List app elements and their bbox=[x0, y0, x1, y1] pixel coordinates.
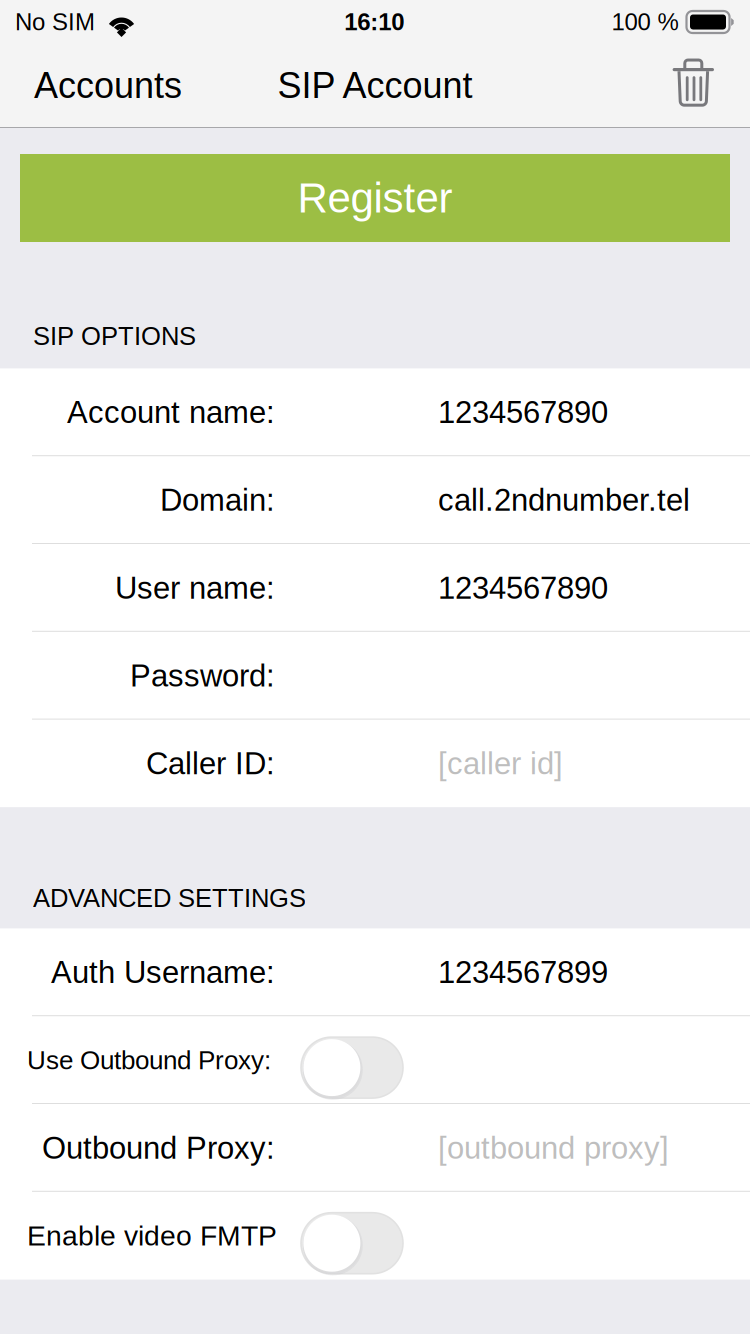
button[interactable]: Account name: bbox=[0, 368, 750, 456]
staticText: Auth Username: bbox=[51, 955, 275, 990]
staticText: [outbound proxy] bbox=[438, 1131, 669, 1165]
button[interactable]: Caller ID: bbox=[0, 720, 750, 807]
staticText: Caller ID: bbox=[146, 746, 275, 781]
staticText: SIP OPTIONS bbox=[33, 322, 196, 350]
staticText: Register bbox=[297, 174, 452, 221]
staticText: Account name: bbox=[67, 395, 275, 430]
button[interactable]: Accounts bbox=[0, 44, 216, 127]
button[interactable]: Outbound Proxy: bbox=[0, 1104, 750, 1192]
staticText: ADVANCED SETTINGS bbox=[33, 884, 306, 912]
staticText: Password: bbox=[130, 658, 275, 693]
staticText: Enable video FMTP bbox=[27, 1220, 277, 1251]
button[interactable]: User name: bbox=[0, 544, 750, 632]
staticText: 1234567899 bbox=[438, 955, 608, 990]
staticText: 1234567890 bbox=[438, 395, 608, 430]
staticText: SIP Account bbox=[277, 65, 472, 106]
staticText: 16:10 bbox=[344, 9, 404, 35]
staticText: call.2ndnumber.tel bbox=[438, 483, 690, 517]
staticText: Outbound Proxy: bbox=[42, 1131, 275, 1165]
staticText: [caller id] bbox=[438, 746, 563, 781]
button[interactable]: Delete account bbox=[645, 44, 750, 127]
button[interactable]: Enable video FMTP bbox=[301, 1198, 403, 1274]
button[interactable]: Use Outbound Proxy: bbox=[301, 1022, 403, 1098]
staticText: 1234567890 bbox=[438, 571, 608, 605]
button[interactable]: Password: bbox=[0, 632, 750, 720]
button[interactable]: Auth Username: bbox=[0, 928, 750, 1016]
staticText: No SIM bbox=[15, 9, 95, 35]
staticText: User name: bbox=[115, 571, 275, 605]
button[interactable]: Domain: bbox=[0, 456, 750, 544]
staticText: Accounts bbox=[34, 65, 182, 106]
staticText: Use Outbound Proxy: bbox=[27, 1046, 271, 1075]
staticText: Domain: bbox=[160, 483, 275, 517]
button[interactable]: Register bbox=[20, 154, 730, 242]
staticText: 100 % bbox=[611, 9, 678, 35]
